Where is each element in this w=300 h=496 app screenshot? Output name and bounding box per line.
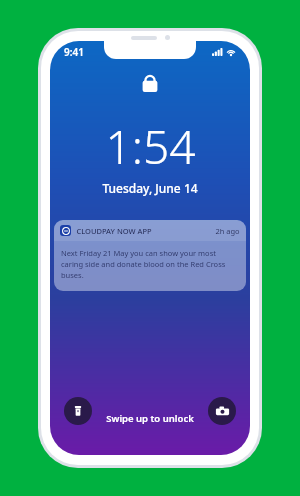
staticText: Tuesday, June 14 <box>102 180 198 196</box>
staticText: 2h ago <box>215 226 240 236</box>
button[interactable]: Flashlight <box>64 397 92 425</box>
staticText: CLOUDPAY NOW APP <box>76 226 152 236</box>
staticText: 9:41 <box>64 45 84 59</box>
staticText: Swipe up to unlock <box>106 412 194 425</box>
button[interactable]: Camera <box>208 397 236 425</box>
staticText: 1:54 <box>105 115 196 178</box>
button[interactable]: CLOUDPAY NOW APP <box>54 220 246 291</box>
staticText: Next Friday 21 May you can show your mos… <box>61 248 239 280</box>
